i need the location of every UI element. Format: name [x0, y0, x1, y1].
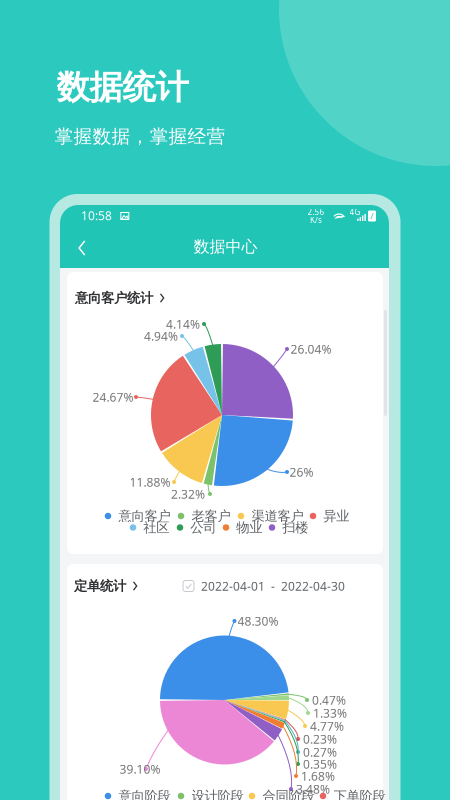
staticText: 11.88%: [130, 474, 171, 490]
staticText: 物业: [236, 519, 262, 536]
staticText: 1.68%: [301, 768, 335, 784]
staticText: 0.27%: [303, 744, 337, 760]
staticText: 4.14%: [166, 316, 200, 332]
staticText: 4.77%: [310, 718, 344, 734]
staticText: 意向阶段: [119, 788, 171, 800]
staticText: 2022-04-01 - 2022-04-30: [201, 578, 345, 594]
staticText: 10:58: [81, 207, 112, 223]
staticText: 39.10%: [119, 761, 160, 777]
staticText: 意向客户统计: [75, 290, 153, 306]
staticText: 社区: [143, 519, 169, 536]
staticText: 0.47%: [312, 692, 346, 708]
staticText: 公司: [190, 519, 216, 536]
staticText: 掌握数据，掌握经营: [54, 125, 225, 148]
staticText: 7: [369, 211, 374, 221]
staticText: 扫楼: [282, 519, 308, 536]
staticText: 定单统计: [74, 578, 126, 594]
button[interactable]: 2022-04-01 - 2022-04-30: [183, 574, 351, 598]
button[interactable]: 意向客户统计: [75, 285, 175, 311]
staticText: 老客户: [191, 508, 230, 524]
staticText: 0.35%: [303, 756, 337, 772]
staticText: 数据统计: [57, 67, 189, 108]
staticText: 4.94%: [144, 328, 178, 344]
staticText: 2.56: [307, 207, 324, 217]
button[interactable]: 定单统计: [74, 573, 146, 599]
staticText: 48.30%: [238, 613, 279, 629]
staticText: 2.32%: [171, 486, 205, 502]
staticText: 4G: [349, 207, 360, 217]
staticText: 下单阶段: [334, 788, 386, 800]
staticText: 异业: [323, 508, 349, 524]
staticText: 意向客户: [119, 508, 171, 524]
staticText: K/s: [310, 215, 322, 225]
staticText: 24.67%: [92, 389, 133, 405]
staticText: 0.23%: [303, 731, 337, 747]
staticText: 26%: [289, 464, 313, 480]
staticText: 数据中心: [194, 237, 258, 256]
staticText: 设计阶段: [192, 788, 244, 800]
staticText: 渠道客户: [252, 508, 304, 524]
staticText: 1.33%: [313, 705, 347, 721]
staticText: 合同阶段: [263, 788, 315, 800]
staticText: 26.04%: [291, 341, 332, 357]
button[interactable]: Back: [65, 231, 99, 265]
staticText: 3.48%: [296, 781, 330, 797]
